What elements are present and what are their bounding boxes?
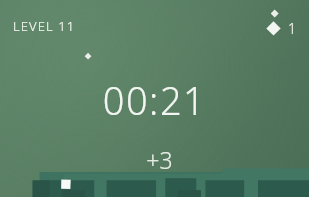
staticText: LEVEL 11 (13, 17, 76, 35)
staticText: 00:21 (0, 74, 309, 197)
staticText: 1 (288, 19, 296, 38)
button[interactable]: LEVEL 11 (13, 17, 76, 35)
button[interactable]: Diamonds collected: 1 (265, 18, 299, 38)
staticText: +3 (5, 144, 309, 197)
